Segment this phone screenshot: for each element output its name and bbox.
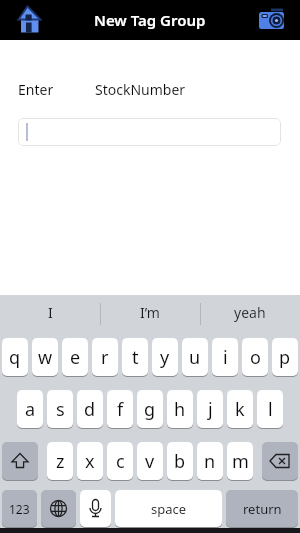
staticText: h — [174, 397, 186, 422]
staticText: o — [250, 345, 261, 370]
button[interactable]: x — [77, 442, 103, 480]
staticText: t — [132, 345, 139, 370]
staticText: m — [232, 449, 249, 474]
button[interactable]: return — [226, 490, 298, 527]
button[interactable]: v — [137, 442, 163, 480]
button[interactable]: i — [212, 338, 238, 376]
staticText: return — [243, 500, 282, 518]
staticText: yeah — [234, 303, 266, 322]
button[interactable]: m — [227, 442, 253, 480]
staticText: n — [204, 449, 216, 474]
button[interactable] — [262, 442, 298, 480]
staticText: g — [144, 397, 156, 422]
staticText: z — [56, 449, 65, 474]
staticText: f — [117, 397, 124, 422]
button[interactable]: y — [152, 338, 178, 376]
staticText: a — [25, 397, 36, 422]
button[interactable]: p — [272, 338, 298, 376]
button[interactable]: n — [197, 442, 223, 480]
staticText: u — [189, 345, 201, 370]
button[interactable] — [80, 490, 111, 527]
staticText: p — [279, 345, 291, 370]
button[interactable]: space — [115, 490, 222, 527]
staticText: q — [9, 345, 21, 370]
staticText: Enter — [18, 80, 54, 99]
staticText: I’m — [140, 303, 160, 322]
button[interactable]: l — [257, 390, 283, 428]
button[interactable]: t — [122, 338, 148, 376]
button[interactable]: 123 — [2, 490, 37, 527]
staticText: space — [151, 500, 187, 518]
staticText: b — [174, 449, 186, 474]
button[interactable]: a — [17, 390, 43, 428]
button[interactable]: d — [77, 390, 103, 428]
button[interactable] — [14, 2, 48, 38]
staticText: StockNumber — [95, 80, 186, 99]
staticText: k — [235, 397, 245, 422]
button[interactable]: q — [2, 338, 28, 376]
staticText: c — [116, 449, 125, 474]
staticText: I — [48, 303, 53, 322]
staticText: j — [208, 397, 213, 422]
staticText: r — [101, 345, 109, 370]
button[interactable] — [41, 490, 76, 527]
button[interactable]: o — [242, 338, 268, 376]
staticText: x — [85, 449, 95, 474]
staticText: v — [145, 449, 155, 474]
button[interactable]: yeah — [200, 295, 300, 330]
button[interactable]: w — [32, 338, 58, 376]
staticText: New Tag Group — [94, 10, 206, 30]
button[interactable]: u — [182, 338, 208, 376]
staticText: e — [70, 345, 81, 370]
button[interactable]: h — [167, 390, 193, 428]
button[interactable]: g — [137, 390, 163, 428]
staticText: y — [160, 345, 170, 370]
button[interactable]: b — [167, 442, 193, 480]
button[interactable]: j — [197, 390, 223, 428]
button[interactable]: z — [47, 442, 73, 480]
button[interactable]: c — [107, 442, 133, 480]
staticText: s — [56, 397, 65, 422]
button[interactable]: f — [107, 390, 133, 428]
staticText: l — [268, 397, 273, 422]
button[interactable]: k — [227, 390, 253, 428]
staticText: w — [38, 345, 53, 370]
button[interactable]: I’m — [100, 295, 200, 330]
button[interactable] — [18, 118, 281, 146]
staticText: d — [84, 397, 96, 422]
button[interactable]: e — [62, 338, 88, 376]
staticText: 123 — [9, 501, 30, 517]
button[interactable] — [252, 4, 288, 36]
button[interactable]: I — [0, 295, 100, 330]
staticText: i — [223, 345, 228, 370]
button[interactable]: r — [92, 338, 118, 376]
button[interactable]: s — [47, 390, 73, 428]
button[interactable] — [2, 442, 38, 480]
